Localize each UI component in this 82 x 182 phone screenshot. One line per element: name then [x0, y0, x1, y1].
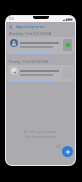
staticText: 9:41 — [9, 17, 15, 21]
button[interactable]: Back — [8, 24, 14, 30]
button[interactable]: Status — [7, 65, 74, 82]
staticText: Thursday, 17 Feb 2022 09:30 AM — [9, 60, 49, 64]
button[interactable]: Status — [63, 39, 72, 51]
button[interactable]: Add appointment — [62, 146, 73, 157]
staticText: Wednesday, 16 Feb 2022 09:30 AM — [9, 32, 52, 36]
button[interactable]: Share — [55, 143, 62, 150]
button[interactable]: No self appointments, click here to add … — [6, 130, 75, 139]
staticText: Appointments — [16, 24, 45, 30]
button[interactable]: Status — [7, 37, 74, 54]
